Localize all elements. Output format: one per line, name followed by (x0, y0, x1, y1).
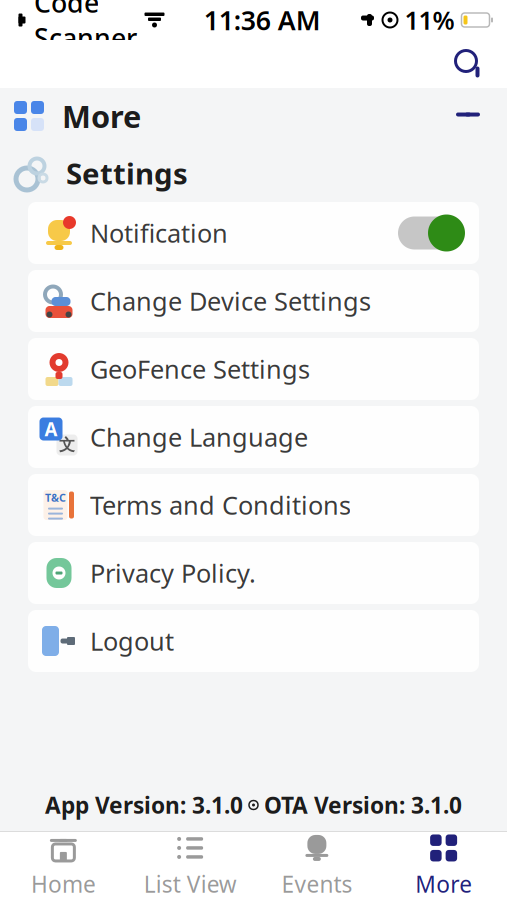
staticText: OTA Version: 3.1.0 (264, 790, 462, 820)
staticText: Events (281, 869, 352, 899)
button[interactable]: T&C (28, 474, 479, 536)
button[interactable]: GeoFence Settings (28, 338, 479, 400)
button[interactable]: More (380, 832, 507, 900)
staticText: Code Scanner (34, 0, 137, 55)
button[interactable]: Change Device Settings (28, 270, 479, 332)
staticText: More (415, 869, 472, 899)
button[interactable]: Logout (28, 610, 479, 672)
staticText: 11:36 AM (204, 2, 321, 38)
staticText: Change Language (90, 420, 308, 454)
staticText: App Version: 3.1.0 (45, 790, 243, 820)
staticText: Home (31, 869, 96, 899)
staticText: 11% (404, 3, 454, 37)
staticText: Privacy Policy. (90, 556, 256, 590)
button[interactable]: Events (253, 832, 380, 900)
staticText: List View (144, 869, 237, 899)
staticText: A (44, 417, 57, 441)
staticText: Change Device Settings (90, 284, 371, 318)
staticText: Terms and Conditions (90, 488, 351, 522)
button[interactable]: List View (127, 832, 254, 900)
staticText: More (62, 96, 141, 136)
button[interactable]: Home (0, 832, 127, 900)
staticText: 文 (59, 435, 75, 455)
staticText: T&C (45, 490, 66, 505)
button[interactable]: Search (443, 40, 495, 88)
staticText: Logout (90, 624, 174, 658)
staticText: Notification (90, 216, 228, 250)
button[interactable]: Notification (28, 202, 479, 264)
staticText: GeoFence Settings (90, 352, 310, 386)
button[interactable]: 文 (28, 406, 479, 468)
button[interactable]: Privacy Policy. (28, 542, 479, 604)
button[interactable]: More (0, 88, 507, 144)
staticText: Settings (66, 153, 188, 192)
